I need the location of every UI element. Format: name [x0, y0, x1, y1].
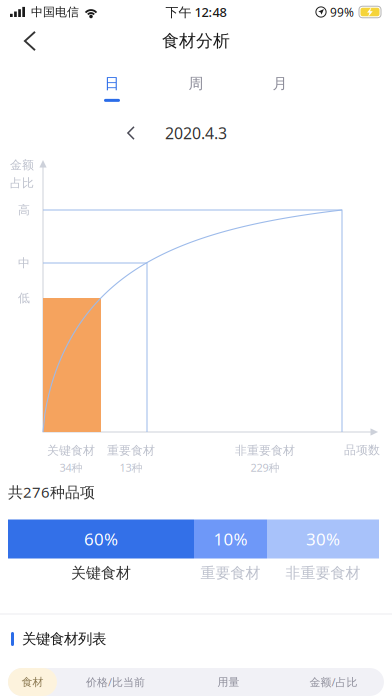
button[interactable]: 月: [238, 69, 322, 107]
staticText: 周: [188, 74, 203, 93]
staticText: 非重要食材: [285, 564, 360, 582]
staticText: 日: [104, 74, 119, 93]
staticText: 下午 12:48: [165, 3, 226, 21]
button[interactable]: 周: [154, 69, 238, 107]
staticText: 占比: [10, 175, 34, 190]
staticText: 30%: [306, 527, 340, 550]
staticText: 高: [18, 202, 30, 217]
staticText: 中国电信: [27, 4, 83, 19]
staticText: 用量: [217, 675, 239, 689]
button[interactable]: 返回: [8, 19, 52, 63]
staticText: 60%: [84, 527, 118, 550]
button[interactable]: 用量: [174, 668, 283, 696]
staticText: 非重要食材: [235, 443, 295, 458]
staticText: 229种: [250, 460, 279, 475]
staticText: 月: [272, 74, 287, 93]
staticText: 重要食材: [200, 564, 260, 582]
staticText: 共276种品项: [8, 482, 95, 502]
staticText: 10%: [213, 527, 247, 550]
staticText: 中: [18, 255, 30, 270]
staticText: 金额/占比: [309, 675, 357, 689]
staticText: 重要食材: [107, 443, 155, 458]
button[interactable]: 日: [70, 69, 154, 107]
staticText: 价格/比当前: [86, 675, 145, 689]
button[interactable]: 金额/占比: [283, 668, 384, 696]
button[interactable]: 食材: [8, 668, 57, 696]
staticText: 99%: [327, 4, 357, 20]
staticText: 34种: [59, 460, 82, 475]
button[interactable]: 价格/比当前: [57, 668, 174, 696]
staticText: 低: [18, 290, 30, 305]
staticText: 食材分析: [162, 30, 230, 52]
button[interactable]: 上一天: [112, 117, 150, 149]
staticText: 关键食材: [47, 443, 95, 458]
staticText: 品项数: [344, 442, 380, 457]
staticText: 食材: [21, 675, 43, 689]
staticText: 关键食材: [71, 564, 131, 582]
staticText: 金额: [10, 157, 34, 172]
staticText: 13种: [119, 460, 142, 475]
staticText: 2020.4.3: [165, 122, 227, 144]
staticText: 关键食材列表: [22, 630, 106, 648]
